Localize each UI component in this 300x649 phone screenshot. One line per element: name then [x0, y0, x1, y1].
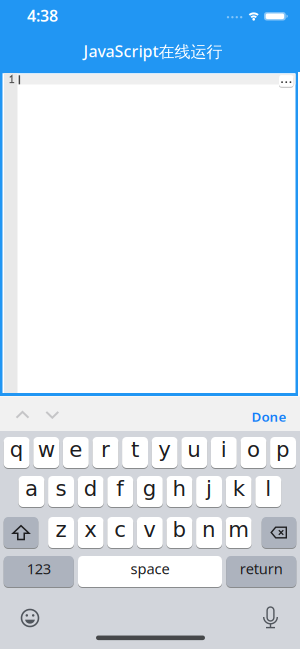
button[interactable]: c — [107, 517, 133, 549]
button[interactable]: x — [78, 517, 104, 549]
button[interactable]: b — [166, 517, 192, 549]
button[interactable]: s — [48, 476, 74, 508]
button[interactable] — [263, 607, 278, 629]
staticText: z — [55, 517, 66, 542]
button[interactable]: y — [152, 437, 178, 469]
staticText: u — [187, 437, 201, 462]
button[interactable]: g — [137, 476, 163, 508]
button[interactable] — [45, 411, 59, 419]
button[interactable]: 123 — [4, 556, 74, 588]
staticText: c — [114, 517, 126, 542]
button[interactable] — [262, 517, 296, 549]
button[interactable]: p — [270, 437, 296, 469]
staticText: p — [276, 437, 290, 462]
button[interactable]: d — [78, 476, 104, 508]
staticText: j — [206, 476, 212, 501]
staticText: m — [228, 517, 249, 542]
staticText: x — [84, 517, 97, 542]
button[interactable]: j — [196, 476, 222, 508]
button[interactable]: Done — [251, 408, 286, 425]
staticText: JavaScript在线运行 — [83, 40, 222, 62]
staticText: v — [143, 517, 156, 542]
button[interactable]: a — [18, 476, 44, 508]
staticText: t — [131, 437, 139, 462]
staticText: 123 — [27, 559, 51, 578]
button[interactable]: q — [4, 437, 30, 469]
staticText: r — [101, 437, 110, 462]
button[interactable]: u — [181, 437, 207, 469]
staticText: w — [38, 437, 55, 462]
button[interactable]: return — [226, 556, 296, 588]
button[interactable]: h — [166, 476, 192, 508]
staticText: n — [202, 517, 216, 542]
staticText: h — [172, 476, 186, 501]
staticText: y — [158, 437, 171, 462]
button[interactable]: e — [63, 437, 89, 469]
button[interactable]: z — [48, 517, 74, 549]
staticText: space — [130, 559, 169, 578]
staticText: k — [233, 476, 245, 501]
button[interactable]: l — [255, 476, 281, 508]
staticText: q — [10, 437, 24, 462]
staticText: i — [221, 437, 227, 462]
staticText: 4:38 — [27, 5, 58, 26]
button[interactable]: t — [122, 437, 148, 469]
button[interactable] — [4, 517, 38, 549]
button[interactable]: r — [92, 437, 118, 469]
button[interactable]: space — [78, 556, 222, 588]
button[interactable]: o — [240, 437, 266, 469]
button[interactable]: v — [137, 517, 163, 549]
button[interactable]: i — [211, 437, 237, 469]
button[interactable]: n — [196, 517, 222, 549]
button[interactable] — [20, 608, 39, 627]
staticText: b — [172, 517, 186, 542]
button[interactable]: w — [33, 437, 59, 469]
staticText: f — [116, 476, 124, 501]
button[interactable]: k — [226, 476, 252, 508]
staticText: e — [69, 437, 82, 462]
staticText: a — [25, 476, 38, 501]
button[interactable]: f — [107, 476, 133, 508]
staticText: s — [55, 476, 66, 501]
staticText: o — [247, 437, 260, 462]
staticText: l — [265, 476, 271, 501]
button[interactable] — [15, 411, 29, 419]
button[interactable] — [279, 75, 293, 88]
staticText: Done — [251, 408, 286, 425]
staticText: d — [84, 476, 98, 501]
staticText: return — [240, 559, 283, 578]
staticText: g — [143, 476, 157, 501]
button[interactable]: m — [226, 517, 252, 549]
